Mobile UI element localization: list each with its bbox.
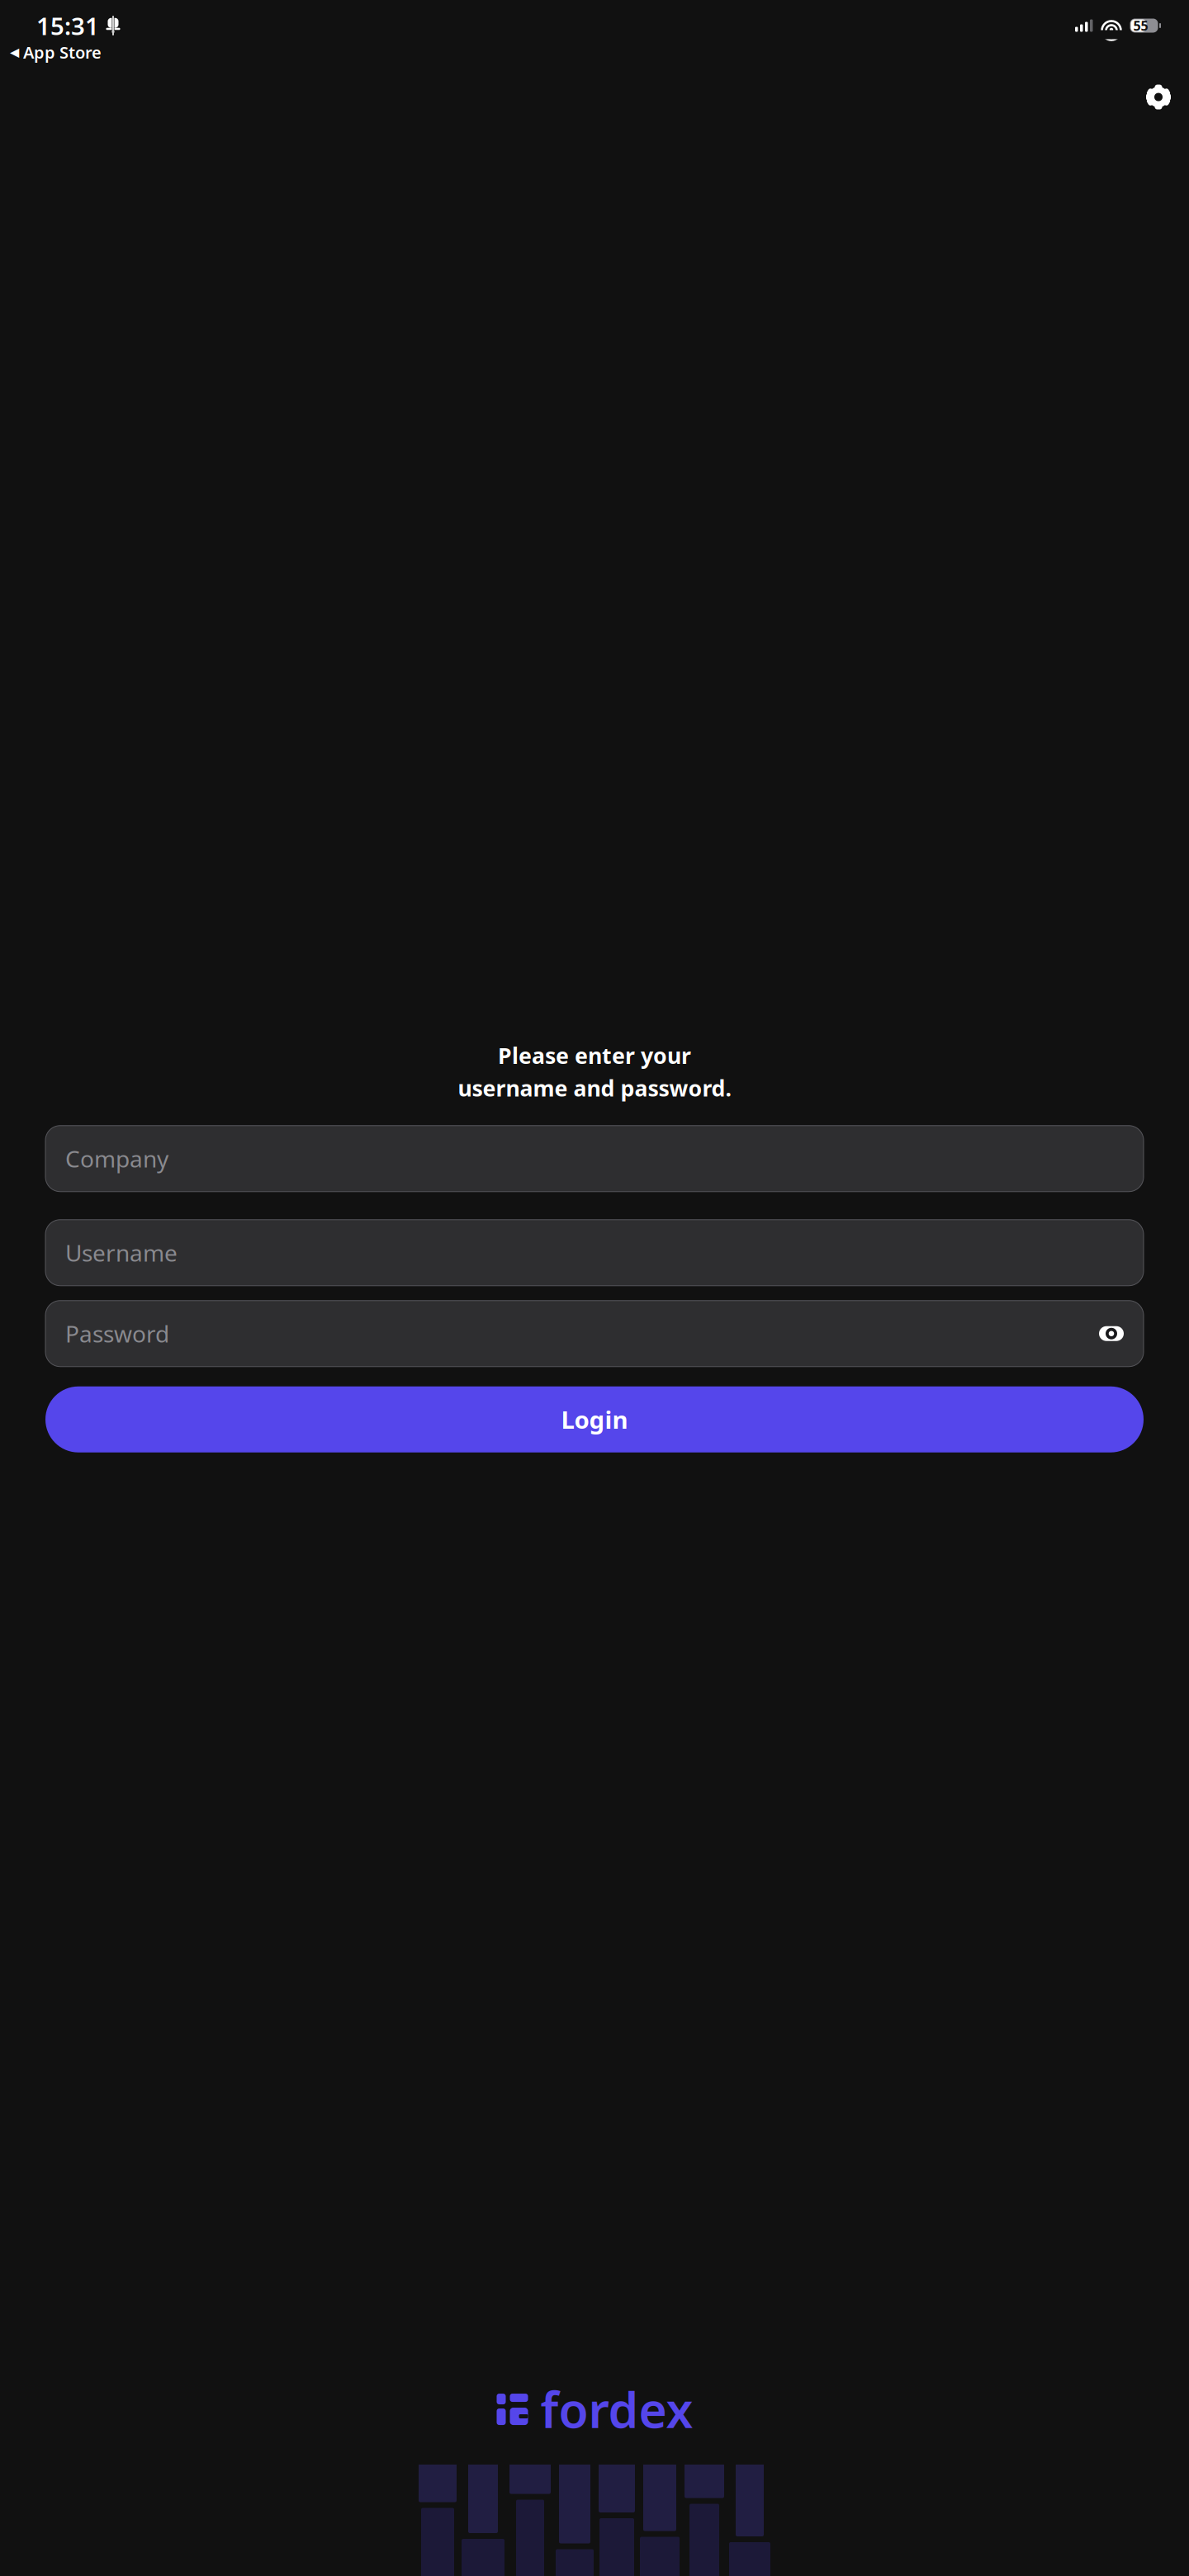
staticText: fordex [540,2377,693,2441]
staticText: Please enter your [498,1041,691,1070]
staticText: username and password. [458,1073,731,1102]
button[interactable]: Settings [1139,78,1177,116]
staticText: Password [65,1318,169,1349]
button[interactable]: Password [45,1301,1144,1367]
button[interactable]: Company [45,1126,1144,1192]
staticText: Username [65,1237,178,1268]
staticText: 15:31 [36,9,99,42]
staticText: 55 [1133,17,1148,34]
staticText: Login [561,1403,628,1436]
staticText: App Store [23,41,102,63]
staticText: Company [65,1143,168,1174]
staticText: ◀ [10,45,19,59]
button[interactable]: Login [45,1386,1144,1452]
button[interactable]: Username [45,1220,1144,1286]
